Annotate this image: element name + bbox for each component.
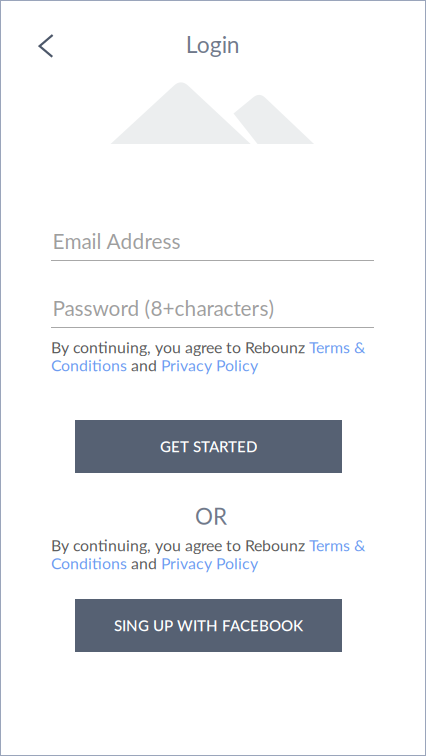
staticText: Terms &: [309, 535, 365, 554]
button[interactable]: Conditions: [51, 553, 127, 572]
staticText: OR: [195, 503, 227, 529]
staticText: Privacy Policy: [161, 553, 258, 572]
staticText: Terms &: [309, 337, 365, 356]
staticText: Email Address: [52, 228, 180, 253]
staticText: and: [127, 355, 161, 374]
button[interactable]: Privacy Policy: [161, 553, 258, 572]
button[interactable]: Terms &: [309, 535, 365, 554]
staticText: Privacy Policy: [161, 355, 258, 374]
button[interactable]: SING UP WITH FACEBOOK: [75, 599, 342, 652]
button[interactable]: Back: [34, 29, 70, 69]
staticText: and: [127, 553, 161, 572]
button[interactable]: Privacy Policy: [161, 355, 258, 374]
button[interactable]: Terms &: [309, 337, 365, 356]
staticText: Conditions: [51, 355, 127, 374]
staticText: Conditions: [51, 553, 127, 572]
staticText: Login: [186, 31, 240, 58]
button[interactable]: Conditions: [51, 355, 127, 374]
staticText: By continuing, you agree to Rebounz: [51, 535, 309, 554]
staticText: GET STARTED: [160, 437, 257, 456]
staticText: Password (8+characters): [52, 295, 274, 320]
staticText: By continuing, you agree to Rebounz: [51, 337, 309, 356]
button[interactable]: GET STARTED: [75, 420, 342, 473]
staticText: SING UP WITH FACEBOOK: [114, 616, 303, 635]
